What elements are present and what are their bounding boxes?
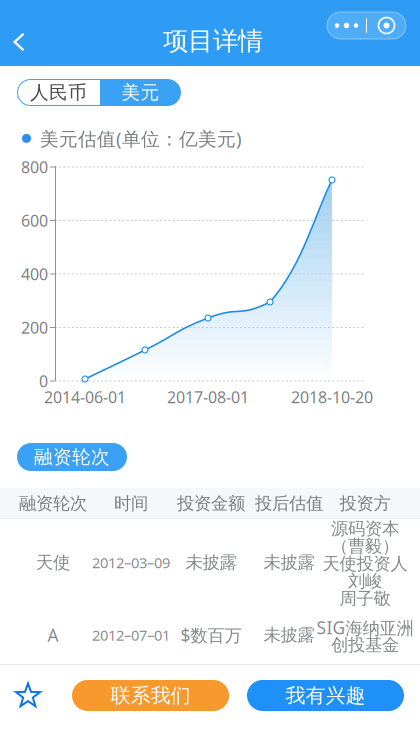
staticText: 200 bbox=[21, 317, 48, 338]
staticText: 未披露 bbox=[263, 624, 314, 646]
staticText: SIG海纳亚洲 bbox=[316, 616, 413, 639]
staticText: 投后估值 bbox=[255, 493, 323, 514]
button[interactable]: 融资轮次 bbox=[17, 443, 127, 471]
staticText: 时间 bbox=[114, 493, 148, 514]
button[interactable]: 返回 bbox=[0, 20, 41, 64]
staticText: 人民币 bbox=[30, 81, 87, 104]
staticText: 0 bbox=[39, 370, 48, 392]
button[interactable]: 收藏 bbox=[0, 664, 56, 728]
staticText: 美元 bbox=[121, 81, 159, 104]
staticText: 600 bbox=[21, 210, 48, 231]
staticText: 800 bbox=[21, 156, 48, 178]
staticText: 创投基金 bbox=[331, 634, 399, 656]
staticText: 投资金额 bbox=[177, 493, 245, 514]
staticText: 周子敬 bbox=[339, 588, 390, 609]
staticText: （曹毅） bbox=[331, 536, 399, 557]
staticText: 天使 bbox=[36, 552, 70, 573]
button[interactable]: 人民币 bbox=[17, 79, 100, 106]
button[interactable]: 更多 bbox=[327, 12, 406, 39]
button[interactable]: 美元 bbox=[100, 79, 181, 106]
button[interactable]: 我有兴趣 bbox=[247, 680, 404, 711]
staticText: 400 bbox=[21, 263, 48, 285]
staticText: 我有兴趣 bbox=[285, 683, 365, 708]
staticText: 天使投资人 bbox=[322, 553, 407, 574]
staticText: 2014-06-01 bbox=[44, 386, 126, 408]
staticText: 源码资本 bbox=[331, 518, 399, 539]
staticText: 联系我们 bbox=[110, 683, 190, 708]
staticText: 融资轮次 bbox=[19, 493, 87, 514]
staticText: 2017-08-01 bbox=[167, 386, 249, 408]
button[interactable]: 天使 bbox=[0, 519, 420, 606]
staticText: 2012–03–09 bbox=[92, 553, 170, 572]
button[interactable]: A bbox=[0, 606, 420, 664]
staticText: $数百万 bbox=[180, 623, 241, 646]
staticText: 刘峻 bbox=[348, 571, 382, 592]
staticText: 2018-10-20 bbox=[291, 386, 373, 408]
staticText: 未披露 bbox=[263, 552, 314, 573]
staticText: 美元估值(单位：亿美元) bbox=[40, 126, 242, 151]
button[interactable]: 联系我们 bbox=[72, 680, 229, 711]
staticText: 融资轮次 bbox=[34, 445, 110, 468]
staticText: 项目详情 bbox=[163, 25, 263, 56]
staticText: 未披露 bbox=[185, 552, 236, 573]
staticText: 2012–07–01 bbox=[92, 625, 170, 645]
staticText: 投资方 bbox=[339, 493, 390, 514]
staticText: A bbox=[47, 623, 58, 646]
